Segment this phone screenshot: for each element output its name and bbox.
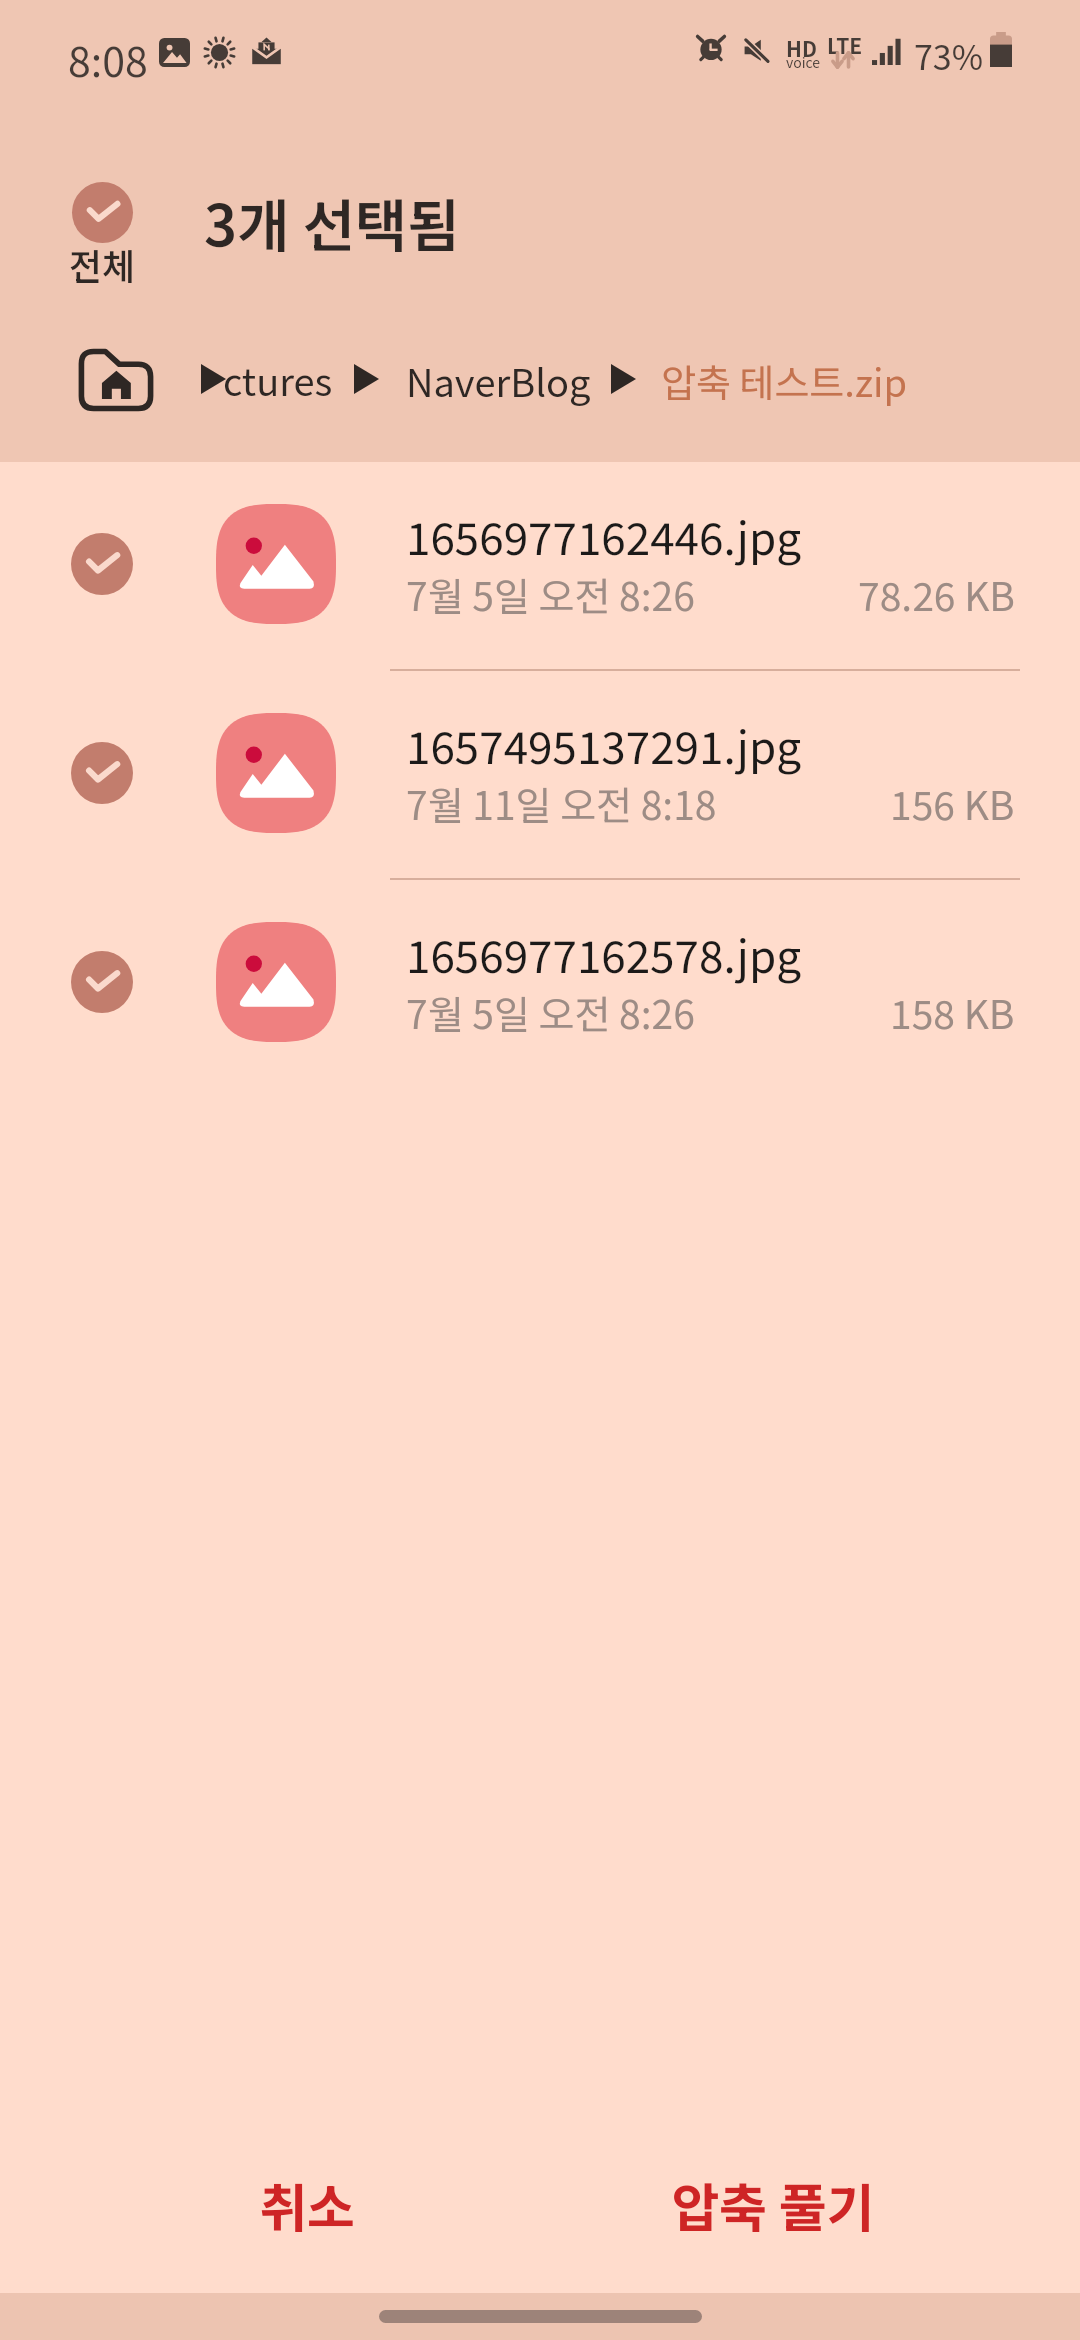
staticText: 압축 풀기 — [671, 2167, 875, 2242]
staticText: 158 KB — [890, 984, 1015, 1040]
staticText: 7월 5일 오전 8:26 — [406, 566, 695, 622]
staticText: 78.26 KB — [858, 566, 1015, 622]
staticText: 1656977162578.jpg — [406, 922, 802, 986]
button[interactable]: 홈 폴더 — [78, 348, 154, 412]
button[interactable]: 전체 선택 — [40, 170, 164, 295]
staticText: NaverBlog — [406, 353, 591, 408]
staticText: 73% — [914, 31, 984, 80]
button[interactable]: 1656977162578.jpg 선택 해제 — [0, 880, 1080, 1089]
staticText: HD — [786, 33, 817, 63]
staticText: 7월 11일 오전 8:18 — [406, 775, 717, 831]
staticText: ctures — [223, 352, 333, 407]
button[interactable]: NaverBlog — [406, 352, 591, 408]
button[interactable]: 1656977162446.jpg 선택 해제 — [41, 503, 163, 625]
staticText: 1656977162446.jpg — [406, 504, 802, 568]
button[interactable]: 1657495137291.jpg 선택 해제 — [0, 671, 1080, 880]
staticText: 8:08 — [68, 29, 148, 88]
button[interactable]: 1656977162578.jpg 선택 해제 — [41, 921, 163, 1043]
staticText: 3개 선택됨 — [204, 181, 460, 264]
button[interactable]: 취소 — [74, 2138, 540, 2270]
staticText: 압축 테스트.zip — [661, 353, 907, 408]
staticText: 전체 — [69, 238, 136, 290]
button[interactable]: 1657495137291.jpg 선택 해제 — [41, 712, 163, 834]
staticText: 156 KB — [890, 775, 1015, 831]
button[interactable]: 압축 풀기 — [540, 2138, 1006, 2270]
staticText: 7월 5일 오전 8:26 — [406, 984, 695, 1040]
staticText: 1657495137291.jpg — [406, 713, 802, 777]
staticText: voice — [786, 52, 821, 72]
button[interactable]: ctures — [201, 350, 327, 408]
button[interactable]: 압축 테스트.zip — [661, 352, 907, 408]
staticText: 취소 — [259, 2167, 355, 2242]
button[interactable]: 1656977162446.jpg 선택 해제 — [0, 462, 1080, 671]
staticText: LTE — [827, 30, 863, 60]
